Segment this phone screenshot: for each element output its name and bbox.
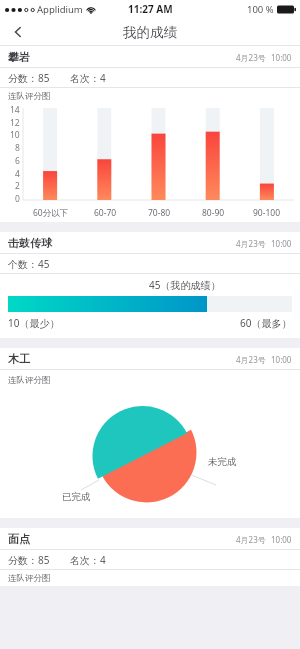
- staticText: 45（我的成绩）: [149, 278, 221, 292]
- staticText: 10（最少）: [8, 316, 60, 330]
- button[interactable]: Back: [0, 18, 36, 46]
- staticText: 6: [15, 155, 20, 166]
- staticText: 个数：45: [8, 257, 50, 271]
- staticText: 4月23号: [236, 534, 266, 545]
- staticText: 10:00: [271, 534, 292, 545]
- staticText: 4: [15, 168, 20, 179]
- staticText: 分数：85: [8, 71, 50, 85]
- staticText: 攀岩: [8, 50, 30, 64]
- staticText: 10:00: [271, 354, 292, 365]
- staticText: 0: [15, 193, 20, 204]
- staticText: 4月23号: [236, 354, 266, 365]
- staticText: 分数：85: [8, 553, 50, 567]
- staticText: 4月23号: [236, 52, 266, 63]
- staticText: 连队评分图: [8, 91, 51, 102]
- staticText: 10: [10, 129, 20, 140]
- staticText: 已完成: [62, 491, 91, 503]
- staticText: 面点: [8, 532, 30, 546]
- staticText: 90-100: [253, 207, 281, 219]
- button[interactable]: 击鼓传球: [0, 232, 300, 338]
- staticText: 未完成: [208, 456, 237, 468]
- staticText: 名次：4: [70, 553, 106, 567]
- staticText: 8: [15, 142, 20, 153]
- staticText: 100 %: [247, 3, 274, 16]
- staticText: 名次：4: [70, 71, 106, 85]
- staticText: 60（最多）: [240, 316, 292, 330]
- staticText: 60-70: [94, 207, 117, 219]
- button[interactable]: 面点: [0, 528, 300, 586]
- staticText: 连队评分图: [8, 573, 51, 584]
- staticText: 14: [10, 104, 20, 115]
- staticText: 连队评分图: [8, 375, 51, 386]
- staticText: 60分以下: [33, 207, 69, 219]
- staticText: 11:27 AM: [128, 2, 173, 16]
- staticText: 木工: [8, 352, 30, 366]
- staticText: 10:00: [271, 238, 292, 249]
- staticText: Applidium: [37, 3, 83, 16]
- staticText: 4月23号: [236, 238, 266, 249]
- staticText: 我的成绩: [123, 24, 177, 41]
- staticText: 12: [10, 117, 20, 128]
- button[interactable]: 木工: [0, 348, 300, 518]
- staticText: 70-80: [148, 207, 171, 219]
- staticText: 2: [15, 180, 20, 191]
- staticText: 击鼓传球: [8, 236, 52, 250]
- staticText: 80-90: [202, 207, 225, 219]
- button[interactable]: 攀岩: [0, 46, 300, 222]
- staticText: 10:00: [271, 52, 292, 63]
